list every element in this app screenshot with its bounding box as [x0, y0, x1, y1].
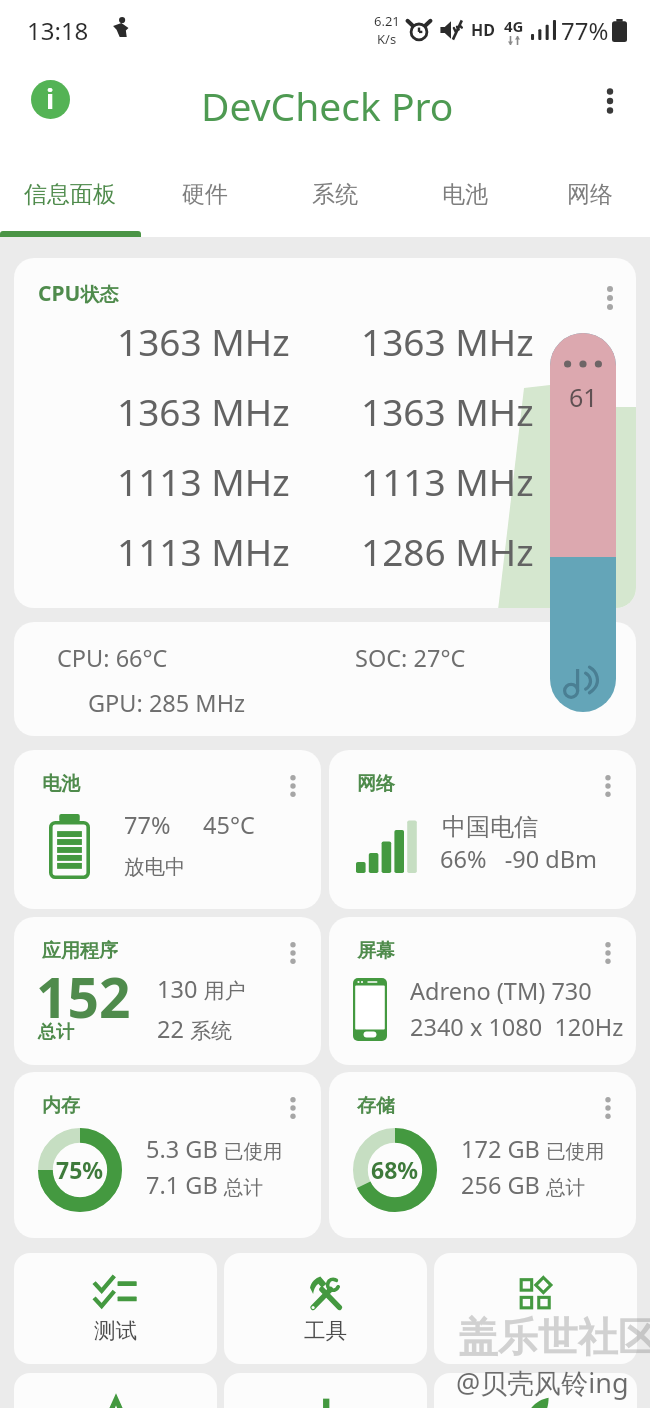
button[interactable]: CPU状态: [14, 258, 636, 608]
staticText: GPU: 285 MHz: [88, 687, 246, 719]
staticText: 45°C: [203, 809, 255, 841]
staticText: 总计: [38, 1021, 74, 1044]
staticText: 测试: [94, 1317, 137, 1344]
button[interactable]: 网络: [530, 144, 650, 237]
staticText: 1113 MHz: [361, 456, 534, 506]
staticText: K/s: [377, 30, 397, 48]
staticText: 网络: [567, 180, 613, 209]
button[interactable]: 存储: [329, 1072, 636, 1238]
staticText: DevCheck Pro: [201, 79, 454, 132]
staticText: 信息面板: [24, 180, 116, 209]
staticText: 硬件: [182, 180, 228, 209]
button[interactable]: CPU: 66°C: [14, 622, 636, 736]
staticText: 77%: [124, 809, 171, 841]
staticText: 256 GB 总计: [461, 1169, 586, 1201]
button[interactable]: 内存: [14, 1072, 321, 1238]
staticText: 152: [36, 959, 131, 1034]
staticText: 1363 MHz: [117, 386, 290, 436]
staticText: CPU状态: [38, 279, 119, 308]
staticText: SOC: 27°C: [355, 642, 466, 674]
staticText: 172 GB 已使用: [461, 1133, 605, 1165]
staticText: 网络: [357, 772, 395, 796]
staticText: HD: [471, 19, 495, 41]
button[interactable]: Sensors: [14, 1373, 217, 1408]
button[interactable]: Card menu: [591, 279, 629, 317]
staticText: 22 系统: [157, 1013, 232, 1045]
staticText: 130 用户: [157, 973, 246, 1005]
button[interactable]: 系统: [270, 144, 400, 237]
staticText: 13:18: [27, 14, 89, 47]
staticText: CPU: 66°C: [57, 642, 168, 674]
button[interactable]: Card menu: [589, 934, 627, 972]
button[interactable]: Card menu: [274, 1089, 312, 1127]
button[interactable]: Card menu: [274, 767, 312, 805]
button[interactable]: Tests: [14, 1253, 217, 1364]
staticText: 6.21: [374, 12, 400, 30]
staticText: i: [46, 80, 55, 117]
button[interactable]: 网络: [329, 750, 636, 909]
button[interactable]: Card menu: [589, 767, 627, 805]
staticText: 工具: [304, 1317, 347, 1344]
staticText: 系统: [312, 180, 358, 209]
staticText: Adreno (TM) 730: [410, 975, 592, 1007]
staticText: 屏幕: [357, 939, 395, 963]
staticText: 放电中: [124, 854, 186, 880]
button[interactable]: 电池: [14, 750, 321, 909]
button[interactable]: App info: [31, 80, 70, 119]
staticText: 68%: [371, 1154, 419, 1185]
button[interactable]: Card menu: [589, 1089, 627, 1127]
staticText: 77%: [561, 14, 609, 47]
staticText: 1113 MHz: [117, 456, 290, 506]
staticText: 内存: [42, 1094, 80, 1118]
staticText: 存储: [357, 1094, 395, 1118]
staticText: 电池: [42, 772, 80, 796]
button[interactable]: Monitor: [224, 1373, 427, 1408]
staticText: 61: [569, 380, 598, 414]
staticText: 盖乐世社区: [458, 1312, 650, 1362]
staticText: 应用程序: [42, 939, 118, 963]
staticText: 66% -90 dBm: [440, 843, 598, 875]
staticText: 1113 MHz: [117, 526, 290, 576]
staticText: 75%: [56, 1154, 104, 1185]
button[interactable]: 硬件: [140, 144, 270, 237]
button[interactable]: Card menu: [274, 934, 312, 972]
button[interactable]: 电池: [400, 144, 530, 237]
staticText: 7.1 GB 总计: [146, 1169, 263, 1201]
button[interactable]: Apps: [434, 1253, 637, 1364]
staticText: 4G: [504, 16, 524, 36]
button[interactable]: Battery: [434, 1373, 637, 1408]
button[interactable]: More options: [586, 77, 634, 125]
staticText: 5.3 GB 已使用: [146, 1133, 283, 1165]
staticText: 1363 MHz: [361, 316, 534, 366]
button[interactable]: 屏幕: [329, 917, 636, 1065]
staticText: 1286 MHz: [361, 526, 534, 576]
staticText: 中国电信: [442, 812, 538, 842]
staticText: 2340 x 1080 120Hz: [410, 1011, 624, 1043]
staticText: 电池: [442, 180, 488, 209]
button[interactable]: Tools: [224, 1253, 427, 1364]
button[interactable]: 应用程序: [14, 917, 321, 1065]
button[interactable]: Volume slider: [550, 333, 616, 712]
staticText: 1363 MHz: [361, 386, 534, 436]
staticText: @贝壳风铃ing: [456, 1364, 629, 1401]
button[interactable]: 信息面板: [0, 144, 140, 237]
staticText: 1363 MHz: [117, 316, 290, 366]
